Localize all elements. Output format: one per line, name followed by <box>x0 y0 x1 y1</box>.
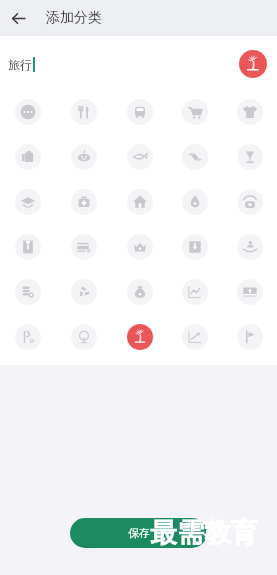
button[interactable] <box>56 89 112 134</box>
staticText: 最需教育 <box>150 516 258 550</box>
button[interactable] <box>112 179 167 224</box>
button[interactable]: Selected icon: travel <box>239 50 267 78</box>
button[interactable] <box>0 224 56 269</box>
button[interactable] <box>56 134 112 179</box>
button[interactable] <box>222 224 277 269</box>
button[interactable] <box>112 224 167 269</box>
button[interactable] <box>167 179 222 224</box>
staticText: 旅行 <box>8 57 32 72</box>
button[interactable] <box>112 89 167 134</box>
button[interactable] <box>56 224 112 269</box>
button[interactable] <box>167 269 222 314</box>
button[interactable] <box>167 224 222 269</box>
button[interactable] <box>0 89 56 134</box>
button[interactable] <box>222 179 277 224</box>
button[interactable] <box>56 179 112 224</box>
button[interactable] <box>222 89 277 134</box>
button[interactable] <box>56 269 112 314</box>
button[interactable] <box>112 134 167 179</box>
button[interactable] <box>112 314 167 359</box>
staticText: 添加分类 <box>46 9 102 27</box>
button[interactable] <box>222 269 277 314</box>
button[interactable] <box>0 179 56 224</box>
button[interactable] <box>112 269 167 314</box>
button[interactable] <box>0 269 56 314</box>
button[interactable] <box>167 314 222 359</box>
button[interactable] <box>0 314 56 359</box>
button[interactable] <box>222 134 277 179</box>
staticText: 保存 <box>128 526 150 540</box>
button[interactable] <box>222 314 277 359</box>
button[interactable] <box>0 134 56 179</box>
button[interactable] <box>167 134 222 179</box>
button[interactable]: Back <box>0 0 36 36</box>
button[interactable] <box>167 89 222 134</box>
button[interactable] <box>56 314 112 359</box>
button[interactable]: 保存 <box>70 518 207 548</box>
